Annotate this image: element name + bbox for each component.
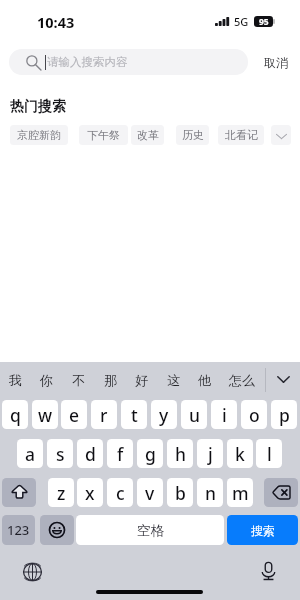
button[interactable]: 请输入搜索内容 [9,49,248,75]
button[interactable]: c [107,478,133,507]
staticText: c [116,481,125,505]
staticText: s [56,442,65,466]
staticText: k [235,442,245,466]
staticText: 热门搜索 [10,98,66,116]
button[interactable]: q [2,400,28,429]
staticText: 10:43 [37,12,75,28]
staticText: a [25,442,36,466]
button[interactable]: 下午祭 [79,125,128,145]
button[interactable]: w [32,400,58,429]
button[interactable]: 怎么 [226,366,258,394]
button[interactable]: Backspace [264,478,298,507]
button[interactable]: 这 [157,366,189,394]
button[interactable]: 不 [62,366,94,394]
button[interactable]: 语音输入 [258,561,278,581]
button[interactable]: l [256,439,282,468]
button[interactable]: 我 [0,366,31,394]
button[interactable]: n [197,478,223,507]
staticText: j [208,442,213,466]
staticText: 下午祭 [87,128,120,142]
button[interactable]: h [167,439,193,468]
button[interactable]: 切换输入语言 [22,562,42,582]
staticText: 改革 [137,128,159,142]
button[interactable]: 历史 [176,125,209,145]
button[interactable]: s [47,439,73,468]
button[interactable]: a [17,439,43,468]
button[interactable]: 他 [188,366,220,394]
button[interactable]: 你 [30,366,62,394]
staticText: h [175,442,186,466]
staticText: 5G [234,14,249,28]
staticText: o [249,403,260,427]
button[interactable]: m [227,478,253,507]
staticText: f [117,442,124,466]
staticText: e [69,403,80,427]
button[interactable]: y [151,400,177,429]
staticText: d [85,442,96,466]
staticText: 你 [40,372,53,388]
staticText: g [145,442,156,466]
button[interactable]: v [137,478,163,507]
button[interactable]: 表情 [40,515,74,545]
button[interactable]: u [181,400,207,429]
staticText: v [145,481,155,505]
button[interactable]: 空格 [76,515,224,545]
button[interactable]: x [77,478,103,507]
staticText: 他 [198,372,211,388]
staticText: x [85,481,95,505]
staticText: u [189,403,200,427]
staticText: 空格 [137,522,164,539]
button[interactable]: o [241,400,267,429]
button[interactable]: 取消 [258,49,293,75]
button[interactable]: 京腔新韵 [10,125,68,145]
button[interactable]: i [211,400,237,429]
staticText: r [100,403,108,427]
button[interactable]: 搜索 [227,515,298,545]
button[interactable]: 那 [94,366,126,394]
button[interactable]: f [107,439,133,468]
staticText: b [175,481,186,505]
staticText: 我 [9,372,22,388]
button[interactable]: t [121,400,147,429]
button[interactable]: e [61,400,87,429]
button[interactable]: 改革 [131,125,164,145]
staticText: t [131,403,138,427]
button[interactable]: g [137,439,163,468]
button[interactable]: r [91,400,117,429]
staticText: 怎么 [229,372,255,388]
button[interactable]: k [227,439,253,468]
staticText: 好 [135,372,148,388]
button[interactable]: 北看记 [218,125,264,145]
button[interactable]: d [77,439,103,468]
staticText: m [232,481,249,505]
staticText: 京腔新韵 [17,128,61,142]
staticText: 历史 [182,128,204,142]
staticText: 95 [259,16,269,27]
button[interactable]: Shift [2,478,36,507]
button[interactable]: 123 [2,515,35,545]
staticText: i [222,403,227,427]
staticText: z [57,481,66,505]
button[interactable]: 收起候选 [266,364,300,394]
staticText: w [38,403,53,427]
staticText: l [267,442,272,466]
staticText: 取消 [264,55,288,70]
staticText: y [159,403,169,427]
staticText: 不 [72,372,85,388]
button[interactable]: 展开更多 [271,125,291,145]
button[interactable]: j [197,439,223,468]
staticText: p [279,403,290,427]
staticText: 123 [7,521,30,539]
staticText: n [205,481,216,505]
button[interactable]: z [48,478,74,507]
staticText: 那 [104,372,117,388]
button[interactable]: b [167,478,193,507]
staticText: 北看记 [225,128,258,142]
staticText: 请输入搜索内容 [47,55,128,69]
button[interactable]: 好 [125,366,157,394]
staticText: q [10,403,21,427]
staticText: 这 [167,372,180,388]
staticText: 搜索 [251,523,275,538]
button[interactable]: p [271,400,297,429]
